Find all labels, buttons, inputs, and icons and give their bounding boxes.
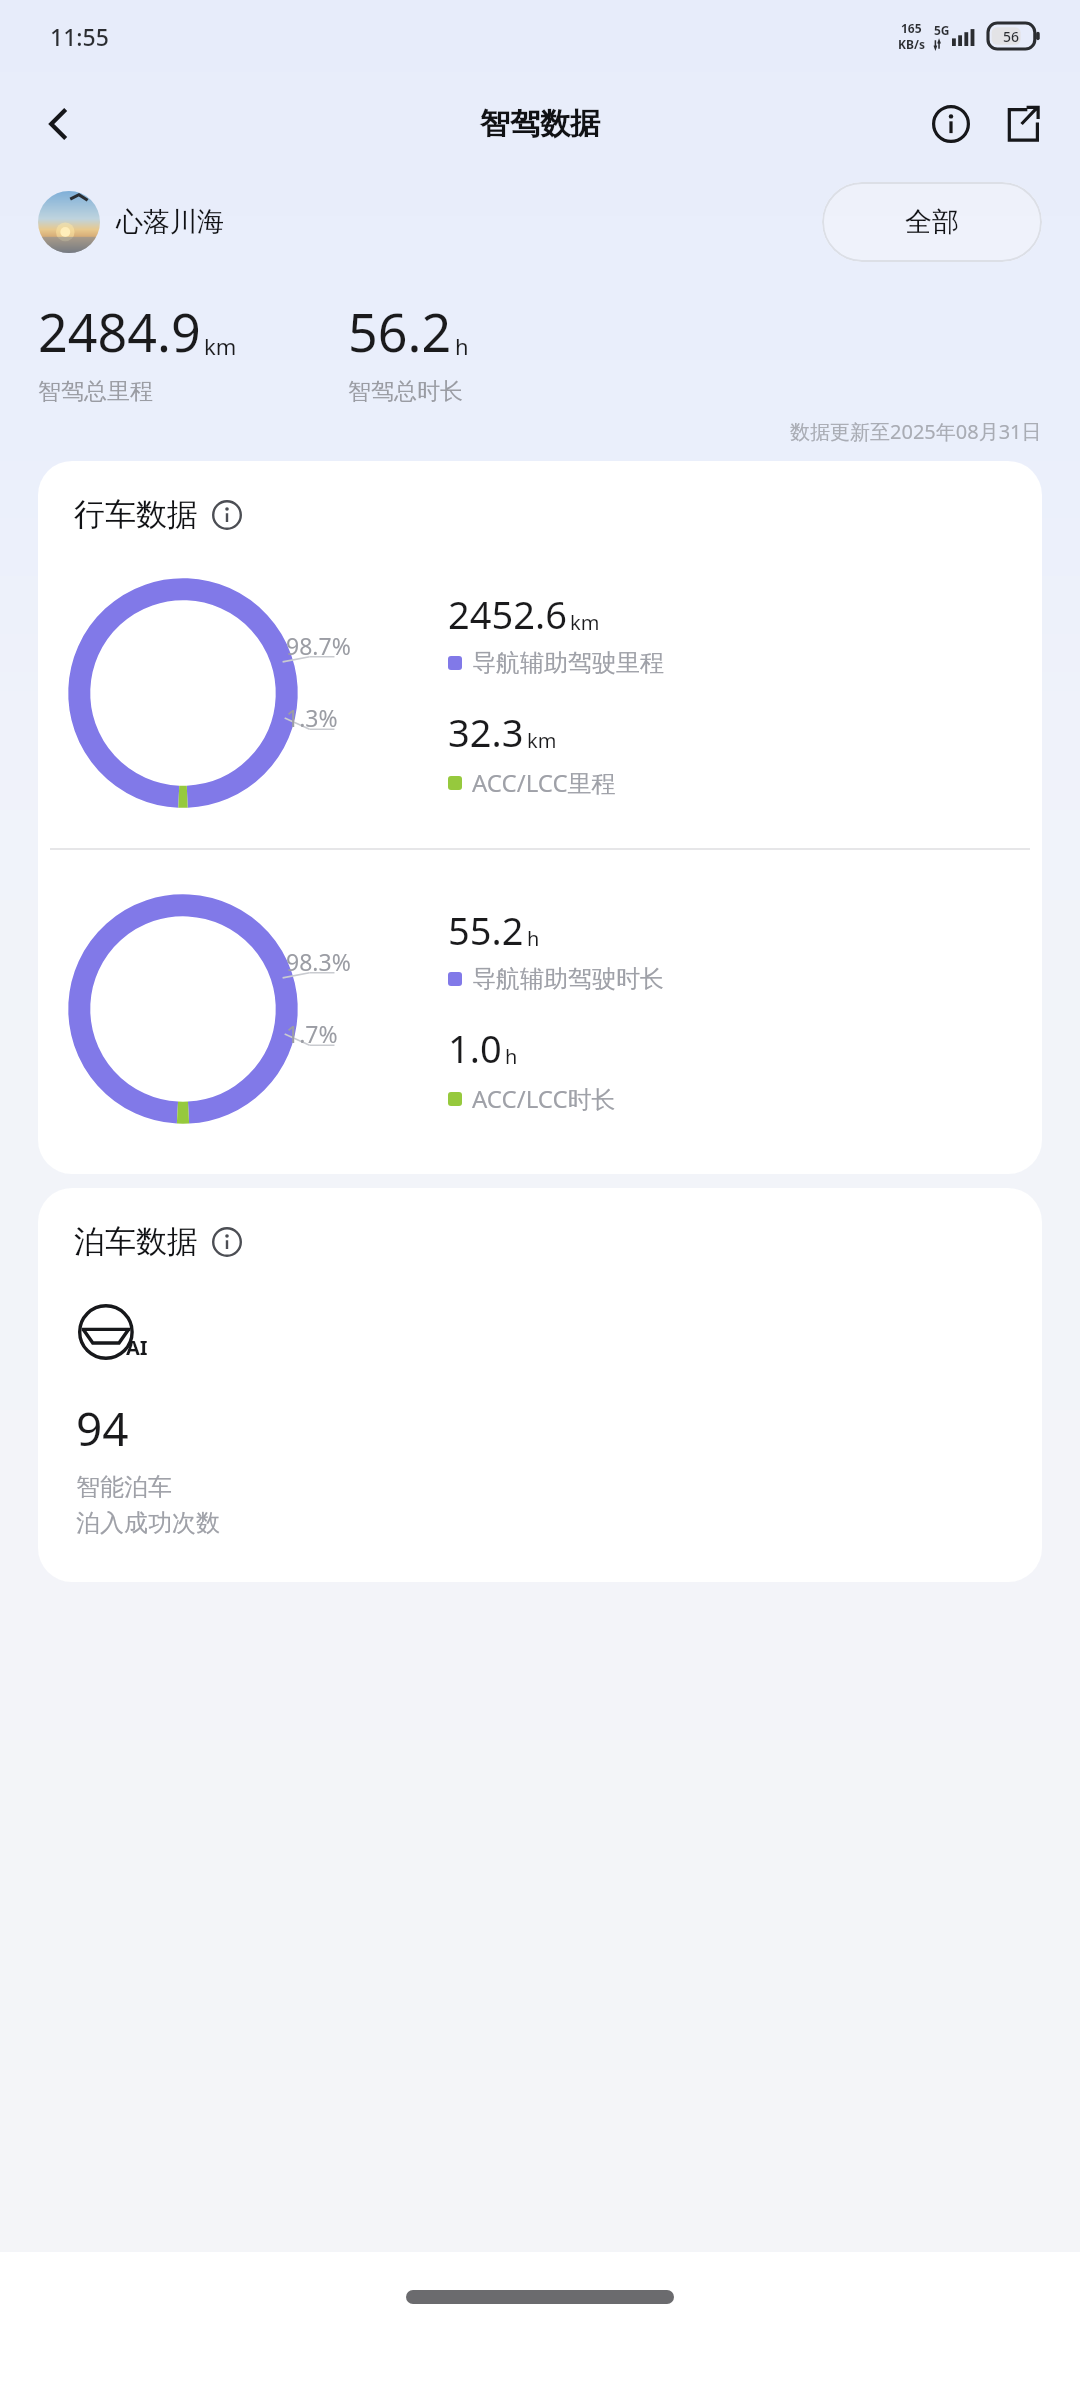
staticText: 56 xyxy=(1003,27,1020,46)
staticText: AI xyxy=(126,1334,148,1361)
staticText: km xyxy=(204,331,237,361)
staticText: km xyxy=(570,609,600,636)
staticText: 行车数据 xyxy=(74,495,198,534)
staticText: h xyxy=(527,925,540,952)
staticText: h xyxy=(505,1043,518,1070)
button[interactable]: 行车数据 xyxy=(74,495,242,534)
staticText: 智驾总时长 xyxy=(348,377,463,406)
staticText: 1.7% xyxy=(286,1018,338,1049)
staticText: km xyxy=(527,727,557,754)
staticText: 1.0 xyxy=(448,1022,502,1074)
staticText: ACC/LCC时长 xyxy=(472,1082,616,1115)
staticText: 98.7% xyxy=(286,630,351,661)
staticText: 数据更新至2025年08月31日 xyxy=(790,418,1042,445)
staticText: 1.3% xyxy=(286,702,338,733)
staticText: 智驾数据 xyxy=(480,105,600,143)
staticText: ACC/LCC里程 xyxy=(472,766,616,799)
staticText: KB/s xyxy=(898,36,925,52)
staticText: 泊入成功次数 xyxy=(76,1508,220,1538)
button[interactable]: Info xyxy=(920,93,982,155)
staticText: 32.3 xyxy=(448,706,524,758)
staticText: 导航辅助驾驶时长 xyxy=(472,964,664,994)
staticText: 55.2 xyxy=(448,904,524,956)
staticText: 泊车数据 xyxy=(74,1222,198,1261)
staticText: 2484.9 xyxy=(38,296,201,367)
staticText: 56.2 xyxy=(348,296,452,367)
button[interactable]: 全部 xyxy=(822,182,1042,262)
staticText: 智驾总里程 xyxy=(38,377,153,406)
staticText: 智能泊车 xyxy=(76,1472,172,1502)
staticText: 5G xyxy=(934,22,950,38)
staticText: h xyxy=(455,331,469,361)
staticText: 11:55 xyxy=(50,21,109,52)
staticText: 165 xyxy=(901,20,922,36)
button[interactable]: 泊车数据 xyxy=(74,1222,242,1261)
button[interactable]: Share xyxy=(992,93,1054,155)
staticText: 全部 xyxy=(905,205,959,239)
staticText: 94 xyxy=(76,1397,129,1460)
staticText: 2452.6 xyxy=(448,588,567,640)
button[interactable]: Back xyxy=(28,93,90,155)
staticText: 导航辅助驾驶里程 xyxy=(472,648,664,678)
staticText: 98.3% xyxy=(286,946,351,977)
button[interactable]: 心落川海 xyxy=(116,205,224,239)
